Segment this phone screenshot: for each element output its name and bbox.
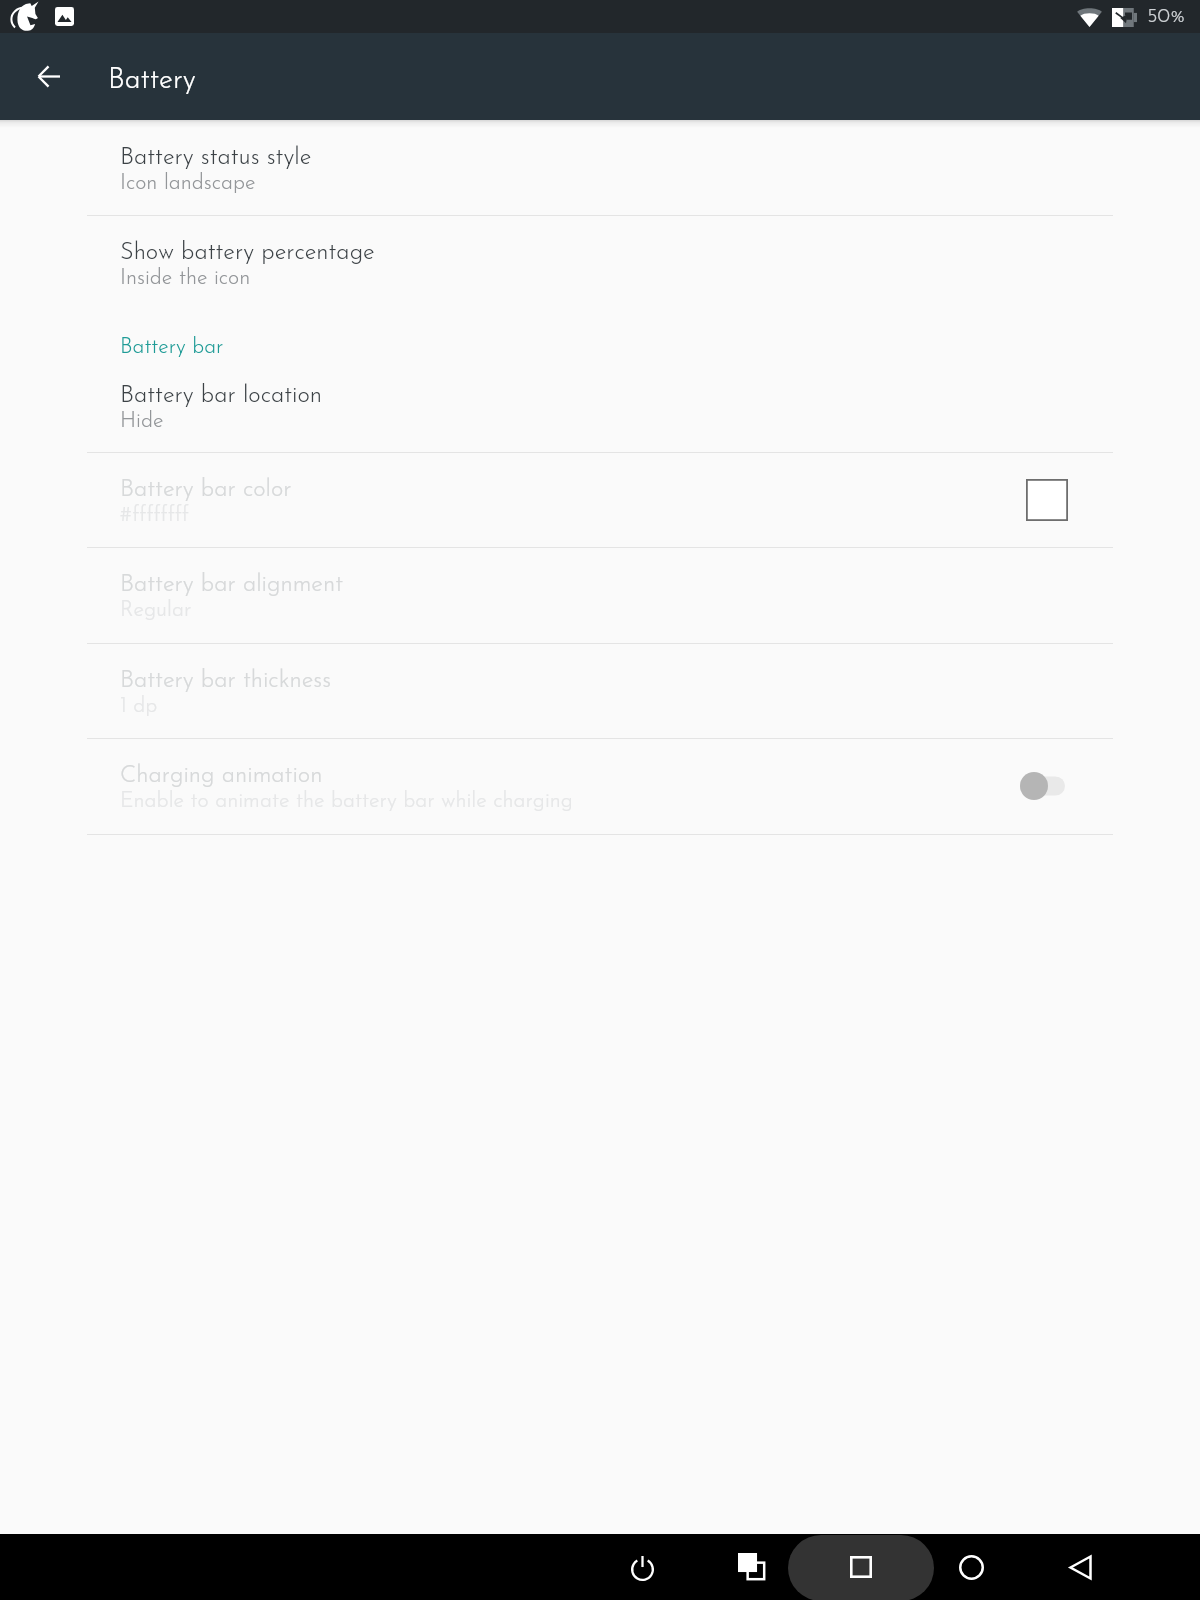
staticText: 50%: [1147, 7, 1186, 27]
staticText: Battery bar alignment: [120, 573, 343, 597]
button[interactable]: Show battery percentage: [0, 215, 1200, 310]
staticText: Battery bar: [120, 337, 224, 358]
staticText: Enable to animate the battery bar while …: [120, 791, 573, 812]
staticText: Regular: [120, 600, 192, 621]
button[interactable]: Screenshot: [722, 1537, 782, 1597]
staticText: Icon landscape: [120, 173, 256, 194]
button[interactable]: Back: [1050, 1537, 1110, 1597]
staticText: Charging animation: [120, 764, 323, 788]
staticText: Battery: [108, 67, 196, 95]
button[interactable]: Battery bar alignment: [0, 547, 1200, 643]
button[interactable]: Charging animation: [0, 738, 1200, 834]
staticText: Inside the icon: [120, 268, 251, 289]
button[interactable]: Power: [612, 1537, 672, 1597]
staticText: #ffffffff: [120, 505, 189, 526]
staticText: Battery bar location: [120, 384, 322, 408]
button[interactable]: Recent apps: [788, 1535, 934, 1600]
button[interactable]: Battery bar thickness: [0, 643, 1200, 738]
staticText: Battery bar thickness: [120, 669, 331, 693]
button[interactable]: Battery bar color: [0, 452, 1200, 547]
button[interactable]: Battery bar location: [0, 358, 1200, 452]
button[interactable]: Navigate up: [23, 50, 75, 102]
button[interactable]: Battery status style: [0, 120, 1200, 215]
staticText: Battery bar color: [120, 478, 292, 502]
staticText: Hide: [120, 411, 164, 432]
staticText: 1 dp: [120, 696, 158, 717]
staticText: Show battery percentage: [120, 241, 375, 265]
button[interactable]: Home: [941, 1537, 1001, 1597]
staticText: Battery status style: [120, 146, 312, 170]
